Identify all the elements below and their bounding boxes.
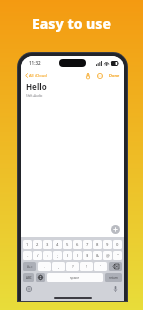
staticText: :	[47, 253, 49, 258]
staticText: 8	[96, 242, 99, 248]
button[interactable]: "	[113, 251, 122, 260]
staticText: '	[100, 264, 101, 269]
button[interactable]: 8	[93, 240, 102, 249]
staticText: 2	[36, 242, 39, 248]
button[interactable]: Done	[107, 72, 122, 79]
staticText: Easy to use	[0, 14, 143, 33]
staticText: -	[27, 253, 29, 258]
button[interactable]: 3	[43, 240, 52, 249]
button[interactable]: :	[43, 251, 52, 260]
button[interactable]: 7	[83, 240, 92, 249]
staticText: 7	[86, 242, 89, 248]
button[interactable]: return	[105, 273, 122, 282]
staticText: Shift+Audio	[26, 94, 43, 98]
button[interactable]: -	[23, 251, 32, 260]
staticText: !	[86, 264, 88, 269]
button[interactable]: 2	[33, 240, 42, 249]
staticText: 11:32	[29, 60, 41, 66]
button[interactable]: 0	[113, 240, 122, 249]
staticText: /	[37, 253, 39, 258]
staticText: ,	[58, 264, 60, 269]
button[interactable]: Share	[84, 72, 91, 79]
button[interactable]: Emoji	[25, 285, 32, 292]
staticText: 5	[66, 242, 69, 248]
staticText: space	[70, 275, 80, 280]
button[interactable]: /	[33, 251, 42, 260]
button[interactable]: (	[63, 251, 72, 260]
button[interactable]: ,	[52, 262, 65, 271]
staticText: Done	[109, 73, 120, 78]
staticText: $	[86, 253, 89, 258]
button[interactable]: All iCloud	[24, 72, 48, 79]
staticText: 3	[46, 242, 49, 248]
staticText: #+=	[27, 265, 33, 269]
staticText: &	[96, 253, 99, 258]
staticText: 4	[56, 242, 59, 248]
button[interactable]: Next keyboard	[36, 273, 45, 282]
button[interactable]: 4	[53, 240, 62, 249]
staticText: All iCloud	[29, 73, 47, 78]
button[interactable]: Delete	[109, 262, 122, 271]
button[interactable]: 6	[73, 240, 82, 249]
button[interactable]: .	[38, 262, 51, 271]
staticText: ?	[72, 264, 74, 269]
staticText: ;	[57, 253, 59, 258]
button[interactable]: &	[93, 251, 102, 260]
staticText: "	[117, 253, 119, 258]
button[interactable]: #+=	[23, 262, 36, 271]
staticText: (	[67, 253, 69, 258]
staticText: 6	[76, 242, 79, 248]
staticText: return	[109, 276, 118, 280]
staticText: )	[77, 253, 79, 258]
button[interactable]: ABC	[23, 273, 34, 282]
button[interactable]: More options	[96, 72, 103, 79]
button[interactable]: ;	[53, 251, 62, 260]
button[interactable]: !	[80, 262, 93, 271]
button[interactable]: )	[73, 251, 82, 260]
button[interactable]: 5	[63, 240, 72, 249]
button[interactable]: 1	[23, 240, 32, 249]
button[interactable]: 9	[103, 240, 112, 249]
button[interactable]: space	[47, 273, 103, 282]
button[interactable]: @	[103, 251, 112, 260]
staticText: 1	[26, 242, 29, 248]
staticText: @	[106, 253, 110, 258]
staticText: 9	[106, 242, 109, 248]
staticText: Hello	[26, 81, 47, 92]
button[interactable]: Add attachment	[111, 225, 120, 234]
button[interactable]: ?	[66, 262, 79, 271]
button[interactable]: $	[83, 251, 92, 260]
button[interactable]: Dictation	[112, 285, 119, 292]
staticText: .	[44, 264, 46, 269]
staticText: ABC	[26, 276, 32, 280]
staticText: 0	[116, 242, 119, 248]
button[interactable]: '	[94, 262, 107, 271]
